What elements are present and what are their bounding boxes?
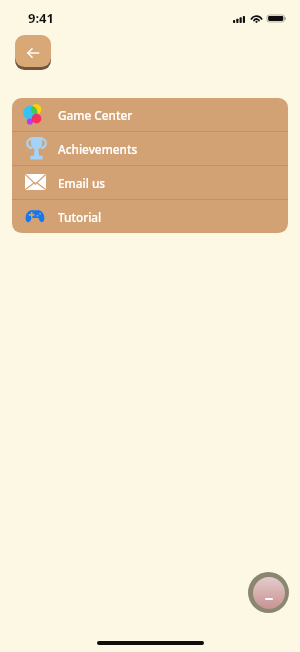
staticText: Game Center [58, 107, 133, 123]
staticText: 9:41 [28, 9, 54, 27]
staticText: Tutorial [58, 209, 102, 225]
button[interactable]: Collapse [248, 572, 289, 613]
button[interactable]: Achievements [12, 132, 288, 165]
staticText: Email us [58, 175, 106, 191]
button[interactable]: Back [15, 35, 51, 67]
button[interactable]: Game Center [12, 98, 288, 131]
staticText: Achievements [58, 141, 138, 157]
button[interactable]: Email us [12, 166, 288, 199]
button[interactable]: Tutorial [12, 200, 288, 233]
